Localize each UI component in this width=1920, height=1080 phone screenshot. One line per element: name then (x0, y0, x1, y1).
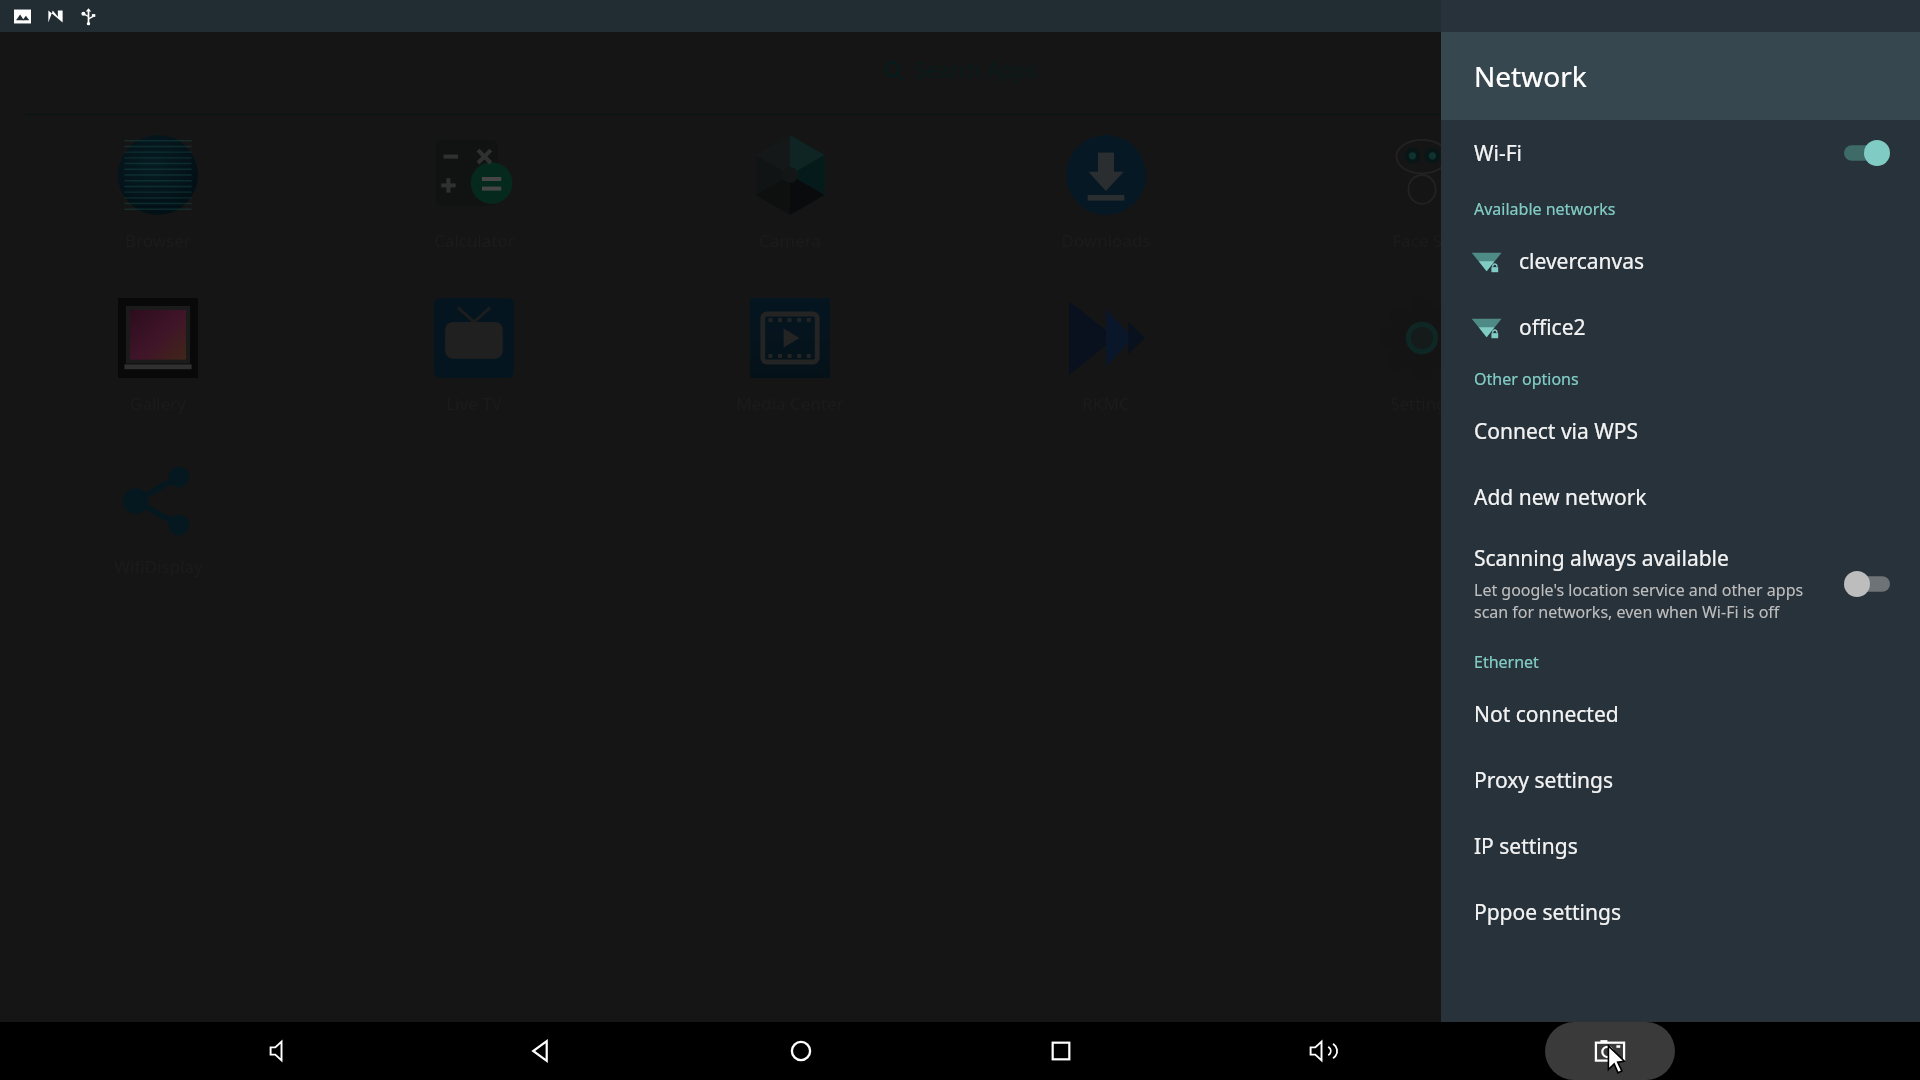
button[interactable]: IP settings (1441, 813, 1920, 879)
button[interactable]: office2 (1441, 294, 1920, 360)
button[interactable]: Calculator (316, 133, 632, 296)
staticText: Other options (1474, 368, 1579, 390)
button[interactable]: Wi-Fi (1441, 120, 1920, 186)
button[interactable]: Live TV (316, 296, 632, 459)
button[interactable]: Pppoe settings (1441, 879, 1920, 945)
staticText: Available networks (1474, 198, 1616, 220)
button[interactable]: Toggle on (1844, 140, 1890, 166)
button[interactable]: Add new network (1441, 464, 1920, 530)
button[interactable]: Gallery (0, 296, 316, 459)
staticText: office2 (1519, 313, 1586, 342)
staticText: Search Apps (915, 56, 1037, 85)
button[interactable]: Scanning always available (1441, 530, 1920, 637)
staticText: Add new network (1474, 483, 1647, 512)
button[interactable]: Downloads (948, 133, 1264, 296)
button[interactable]: Search Apps (0, 26, 1920, 114)
staticText: Settings (1390, 392, 1455, 415)
button[interactable]: Volume down (245, 1022, 317, 1080)
button[interactable]: Proxy settings (1441, 747, 1920, 813)
button[interactable]: Screenshot (1545, 1022, 1675, 1080)
button[interactable]: Home (765, 1022, 837, 1080)
staticText: Ethernet (1474, 651, 1539, 673)
staticText: Network (1474, 57, 1587, 95)
staticText: Let google's location service and other … (1474, 579, 1804, 623)
staticText: Proxy settings (1474, 766, 1613, 795)
button[interactable]: Back (505, 1022, 577, 1080)
staticText: clevercanvas (1519, 247, 1645, 276)
button[interactable]: Media Center (632, 296, 948, 459)
staticText: Pppoe settings (1474, 898, 1621, 927)
staticText: Face Se (1392, 229, 1452, 252)
button[interactable]: Browser (0, 133, 316, 296)
button[interactable]: Recents (1025, 1022, 1097, 1080)
button[interactable]: Face Se (1264, 133, 1580, 296)
button[interactable]: Toggle off (1844, 571, 1890, 597)
staticText: Scanning always available (1474, 544, 1729, 573)
staticText: IP settings (1474, 832, 1578, 861)
button[interactable]: Not connected (1441, 681, 1920, 747)
button[interactable]: Connect via WPS (1441, 398, 1920, 464)
button[interactable]: clevercanvas (1441, 228, 1920, 294)
button[interactable]: Volume up (1285, 1022, 1357, 1080)
staticText: Wi-Fi (1474, 139, 1523, 168)
button[interactable]: Settings (1264, 296, 1580, 459)
staticText: Not connected (1474, 700, 1619, 729)
staticText: Connect via WPS (1474, 417, 1638, 446)
